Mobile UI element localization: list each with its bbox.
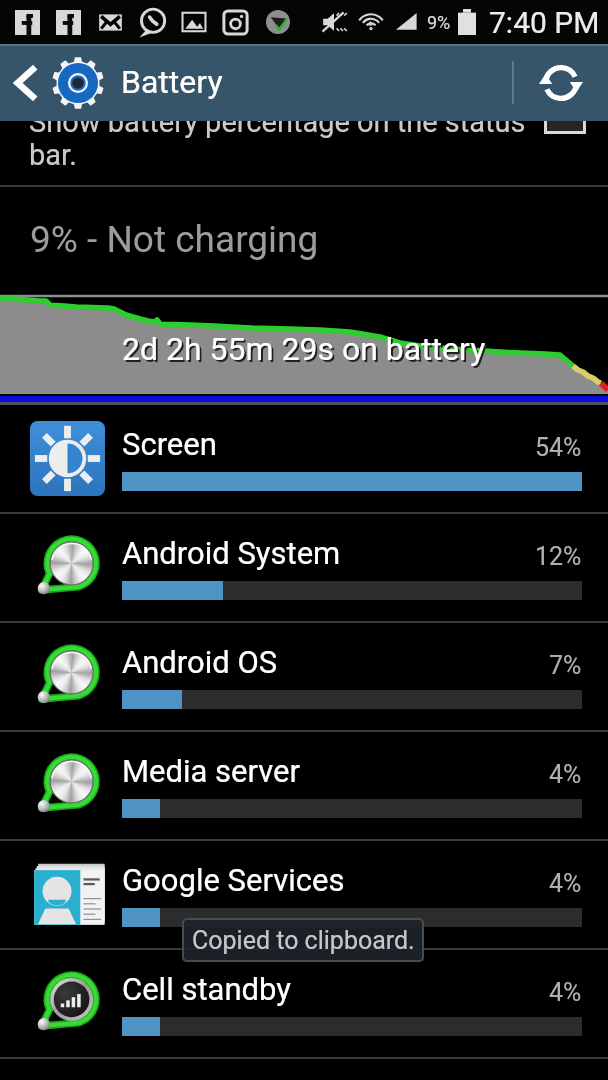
- staticText: 4%: [549, 760, 582, 789]
- staticText: Android System: [122, 535, 535, 571]
- staticText: bar.: [29, 138, 77, 172]
- button[interactable]: Media server: [0, 732, 608, 841]
- staticText: Battery: [121, 63, 223, 101]
- staticText: 2d 2h 55m 29s on battery: [122, 330, 486, 368]
- staticText: 9%: [427, 12, 451, 33]
- staticText: 4%: [549, 978, 582, 1007]
- staticText: 9% - Not charging: [30, 218, 319, 261]
- staticText: 2d 2h 55m 29s on battery: [124, 332, 488, 370]
- staticText: 12%: [535, 542, 582, 571]
- button[interactable]: Android System: [0, 514, 608, 623]
- button[interactable]: Show battery percentage on the status: [0, 121, 608, 185]
- staticText: 7:40 PM: [489, 5, 600, 40]
- button[interactable]: Screen: [0, 405, 608, 514]
- staticText: Android OS: [122, 644, 549, 680]
- staticText: Google Services: [122, 862, 549, 898]
- staticText: 7%: [549, 651, 582, 680]
- staticText: 54%: [535, 433, 582, 462]
- staticText: Show battery percentage on the status: [29, 121, 526, 139]
- staticText: 4%: [549, 869, 582, 898]
- button[interactable]: Android OS: [0, 623, 608, 732]
- staticText: Media server: [122, 753, 549, 789]
- button[interactable]: Refresh: [514, 44, 608, 121]
- button[interactable]: Back: [0, 44, 52, 121]
- button[interactable]: Google Services: [0, 841, 608, 950]
- staticText: Screen: [122, 426, 535, 462]
- button[interactable]: Cell standby: [0, 950, 608, 1059]
- staticText: Cell standby: [122, 971, 549, 1007]
- staticText: Copied to clipboard.: [192, 926, 415, 955]
